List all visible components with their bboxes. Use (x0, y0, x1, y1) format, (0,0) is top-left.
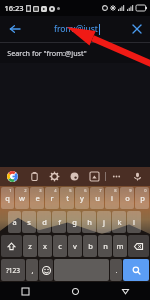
button[interactable]: j (97, 211, 111, 233)
staticText: t (66, 193, 69, 203)
staticText: i (111, 193, 113, 203)
button[interactable]: c (53, 235, 67, 257)
button[interactable]: e (30, 187, 44, 209)
staticText: c (58, 241, 62, 251)
staticText: y (80, 193, 84, 203)
staticText: . (115, 265, 118, 275)
button[interactable]: r (45, 187, 59, 209)
staticText: u (95, 193, 100, 203)
staticText: v (73, 241, 77, 251)
button[interactable]: Clear (124, 16, 150, 42)
staticText: m (116, 241, 124, 251)
button[interactable]: from:@just (30, 16, 124, 42)
staticText: s (27, 217, 31, 227)
button[interactable]: Back (100, 282, 150, 300)
button[interactable]: Emoji (39, 259, 53, 281)
button[interactable]: More (106, 167, 127, 186)
button[interactable]: Voice input (127, 167, 148, 186)
button[interactable]: x (38, 235, 52, 257)
button[interactable]: s (22, 211, 36, 233)
button[interactable]: Search (123, 259, 149, 281)
staticText: f (58, 217, 61, 227)
button[interactable]: k (112, 211, 126, 233)
staticText: l (133, 217, 135, 227)
button[interactable]: Themes (64, 167, 84, 186)
staticText: n (103, 241, 108, 251)
staticText: z (28, 241, 32, 251)
staticText: 1 (9, 188, 12, 193)
button[interactable]: Google (0, 167, 24, 186)
button[interactable]: o (120, 187, 134, 209)
button[interactable]: w (15, 187, 29, 209)
staticText: x (43, 241, 47, 251)
staticText: w (19, 193, 25, 203)
button[interactable]: i (105, 187, 119, 209)
button[interactable]: l (127, 211, 141, 233)
button[interactable]: a (8, 211, 21, 233)
staticText: a (12, 217, 17, 227)
staticText: 0 (144, 188, 147, 193)
button[interactable]: z (23, 235, 37, 257)
button[interactable]: Stickers (84, 167, 105, 186)
button[interactable]: Recents (0, 282, 50, 300)
button[interactable]: v (68, 235, 82, 257)
staticText: Search for "from:@just" (7, 48, 87, 58)
staticText: 8 (114, 188, 117, 193)
button[interactable]: b (83, 235, 97, 257)
staticText: 7 (99, 188, 102, 193)
button[interactable]: p (135, 187, 149, 209)
button[interactable]: Settings (44, 167, 64, 186)
button[interactable]: Clipboard (24, 167, 44, 186)
staticText: 9 (129, 188, 132, 193)
button[interactable]: Shift (1, 235, 22, 257)
staticText: r (50, 193, 54, 203)
staticText: 4 (54, 188, 57, 193)
button[interactable]: y (75, 187, 89, 209)
staticText: from:@just (54, 23, 98, 35)
button[interactable]: , (26, 259, 38, 281)
button[interactable]: Search for "from:@just" (0, 43, 150, 63)
staticText: g (72, 217, 77, 227)
button[interactable]: m (113, 235, 127, 257)
staticText: , (31, 265, 34, 275)
button[interactable]: Backspace (128, 235, 149, 257)
button[interactable]: u (90, 187, 104, 209)
staticText: 16:23 (4, 3, 24, 13)
button[interactable]: d (37, 211, 51, 233)
staticText: q (5, 193, 10, 203)
staticText: ?123 (6, 266, 20, 275)
button[interactable]: q (1, 187, 14, 209)
button[interactable]: Back (0, 16, 30, 42)
staticText: o (125, 193, 130, 203)
staticText: 5 (69, 188, 72, 193)
staticText: h (87, 217, 92, 227)
button[interactable]: t (60, 187, 74, 209)
button[interactable]: n (98, 235, 112, 257)
button[interactable]: g (67, 211, 81, 233)
button[interactable]: f (52, 211, 66, 233)
staticText: 2 (24, 188, 27, 193)
staticText: p (140, 193, 145, 203)
staticText: e (35, 193, 40, 203)
staticText: k (117, 217, 122, 227)
staticText: 3 (39, 188, 42, 193)
button[interactable]: ?123 (1, 259, 25, 281)
button[interactable]: h (82, 211, 96, 233)
staticText: 6 (84, 188, 87, 193)
button[interactable]: . (110, 259, 122, 281)
staticText: d (42, 217, 47, 227)
button[interactable]: Home (50, 282, 100, 300)
staticText: j (103, 217, 105, 227)
staticText: b (88, 241, 93, 251)
